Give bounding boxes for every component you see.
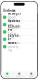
staticText: Updates (8, 19, 20, 23)
staticText: Reminders (8, 25, 21, 32)
button[interactable]: Home (1, 72, 13, 77)
button[interactable]: Search (13, 72, 25, 77)
staticText: Notes (8, 41, 16, 45)
staticText: Profile (29, 75, 34, 77)
staticText: Messages (8, 12, 21, 15)
button[interactable]: Reminders (1, 28, 37, 35)
button[interactable]: Notes (1, 43, 37, 50)
button[interactable]: Calendar (1, 36, 37, 43)
button[interactable]: Profile (25, 72, 37, 77)
staticText: Home (5, 75, 9, 77)
staticText: Inbox (3, 8, 15, 13)
staticText: Grocery list (8, 45, 18, 52)
staticText: Call at 4pm (8, 32, 16, 39)
staticText: Calendar (8, 34, 20, 41)
staticText: Team sync (8, 41, 20, 45)
button[interactable]: Updates (1, 21, 37, 28)
staticText: Search (16, 75, 22, 77)
staticText: Good morning (8, 16, 20, 23)
button[interactable]: Messages (1, 14, 37, 21)
staticText: New version (8, 23, 18, 30)
